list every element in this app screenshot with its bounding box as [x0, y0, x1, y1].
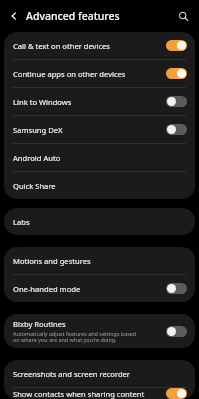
- staticText: Call & text on other devices: [13, 41, 110, 51]
- button[interactable]: Search: [174, 7, 192, 25]
- button[interactable]: Show contacts when sharing content: [4, 388, 195, 399]
- button[interactable]: Labs: [4, 208, 195, 235]
- staticText: Motions and gestures: [13, 256, 91, 266]
- button[interactable]: On: [166, 40, 187, 51]
- button[interactable]: Samsung DeX: [4, 116, 195, 143]
- button[interactable]: Off: [166, 326, 187, 337]
- staticText: Continue apps on other devices: [13, 69, 126, 79]
- button[interactable]: Android Auto: [4, 144, 195, 171]
- button[interactable]: Link to Windows: [4, 88, 195, 115]
- button[interactable]: Off: [166, 96, 187, 107]
- staticText: Link to Windows: [13, 97, 72, 107]
- staticText: Screenshots and screen recorder: [13, 369, 131, 379]
- staticText: Quick Share: [13, 181, 56, 191]
- staticText: Android Auto: [13, 153, 61, 163]
- staticText: Bixby Routines: [13, 319, 66, 329]
- staticText: Labs: [13, 217, 30, 227]
- button[interactable]: On: [166, 68, 187, 79]
- button[interactable]: Motions and gestures: [4, 247, 195, 274]
- staticText: Advanced features: [26, 9, 174, 23]
- button[interactable]: Off: [166, 283, 187, 294]
- button[interactable]: Call & text on other devices: [4, 32, 195, 59]
- button[interactable]: On: [166, 388, 187, 399]
- staticText: Automatically adjust features and settin…: [13, 330, 137, 344]
- button[interactable]: Quick Share: [4, 172, 195, 199]
- button[interactable]: Continue apps on other devices: [4, 60, 195, 87]
- button[interactable]: Off: [166, 124, 187, 135]
- staticText: Samsung DeX: [13, 125, 63, 135]
- staticText: One-handed mode: [13, 284, 81, 294]
- staticText: Show contacts when sharing content: [13, 389, 145, 399]
- button[interactable]: Screenshots and screen recorder: [4, 360, 195, 387]
- button[interactable]: Back: [6, 8, 22, 24]
- button[interactable]: One-handed mode: [4, 275, 195, 302]
- button[interactable]: Bixby Routines: [4, 314, 195, 348]
